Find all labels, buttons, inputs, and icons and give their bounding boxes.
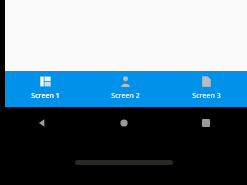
button[interactable]: Screen 2 [85,71,166,107]
staticText: Screen 2 [111,91,140,101]
staticText: Screen 3 [192,91,221,101]
button[interactable]: Screen 3 [166,71,247,107]
button[interactable]: Recent apps [165,107,247,139]
staticText: Screen 1 [31,91,60,101]
button[interactable]: Screen 1 [5,71,85,107]
button[interactable]: Home [83,107,165,139]
button[interactable]: Back [0,107,83,139]
